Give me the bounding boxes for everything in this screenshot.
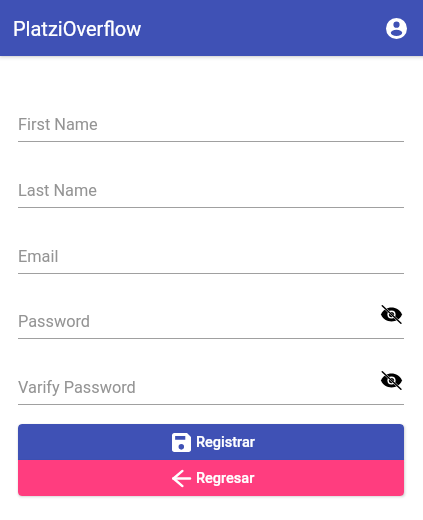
staticText: First Name [18,115,98,134]
button[interactable]: Regresar [18,460,404,496]
button[interactable]: Account [376,8,416,48]
button[interactable]: Toggle password visibility [371,360,411,400]
button[interactable]: Varify Password [18,372,404,405]
staticText: Registrar [196,434,255,451]
button[interactable]: Email [18,241,404,274]
staticText: Varify Password [18,378,136,397]
staticText: Email [18,247,59,266]
staticText: PlatziOverflow [13,17,142,40]
button[interactable]: Toggle password visibility [371,294,411,334]
staticText: Password [18,312,90,331]
button[interactable]: Password [18,306,404,339]
staticText: Regresar [196,470,255,487]
button[interactable]: Last Name [18,175,404,208]
button[interactable]: First Name [18,109,404,142]
button[interactable]: Registrar [18,424,404,460]
staticText: Last Name [18,181,97,200]
